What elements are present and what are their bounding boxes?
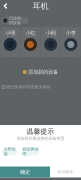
staticText: 请选择你要连接的设备类型: [16, 136, 64, 141]
staticText: 立即连接: [4, 147, 16, 156]
button[interactable]: Back: [1, 1, 10, 10]
staticText: 温馨提示: [26, 127, 54, 136]
button[interactable]: 取消操作: [50, 166, 81, 177]
button[interactable]: 小红: [20, 27, 40, 57]
staticText: 稍后再说吧: [22, 147, 38, 156]
button[interactable]: 我已阅读并同意相关条款: [0, 84, 81, 90]
staticText: 添加新的设备: [28, 69, 58, 75]
button[interactable]: 立即连接: [2, 147, 17, 155]
button[interactable]: 稍后再说吧: [22, 147, 39, 155]
button[interactable]: 小明: [0, 27, 20, 57]
staticText: 小刚: [46, 30, 56, 36]
button[interactable]: 小刚: [41, 27, 60, 57]
button[interactable]: 小李: [61, 27, 81, 57]
staticText: 确定: [20, 169, 30, 175]
staticText: 耳机: [32, 1, 48, 11]
staticText: 取消操作: [57, 169, 73, 174]
staticText: 小红: [25, 30, 35, 36]
button[interactable]: 已连接的设备: [1, 17, 28, 24]
button[interactable]: 确定: [0, 166, 50, 177]
staticText: 已连接的设备: [9, 16, 21, 25]
button[interactable]: 添加新的设备: [23, 69, 58, 75]
staticText: 小明: [5, 30, 15, 36]
staticText: 小李: [66, 30, 76, 36]
staticText: 我已阅读并同意相关条款: [6, 84, 50, 89]
